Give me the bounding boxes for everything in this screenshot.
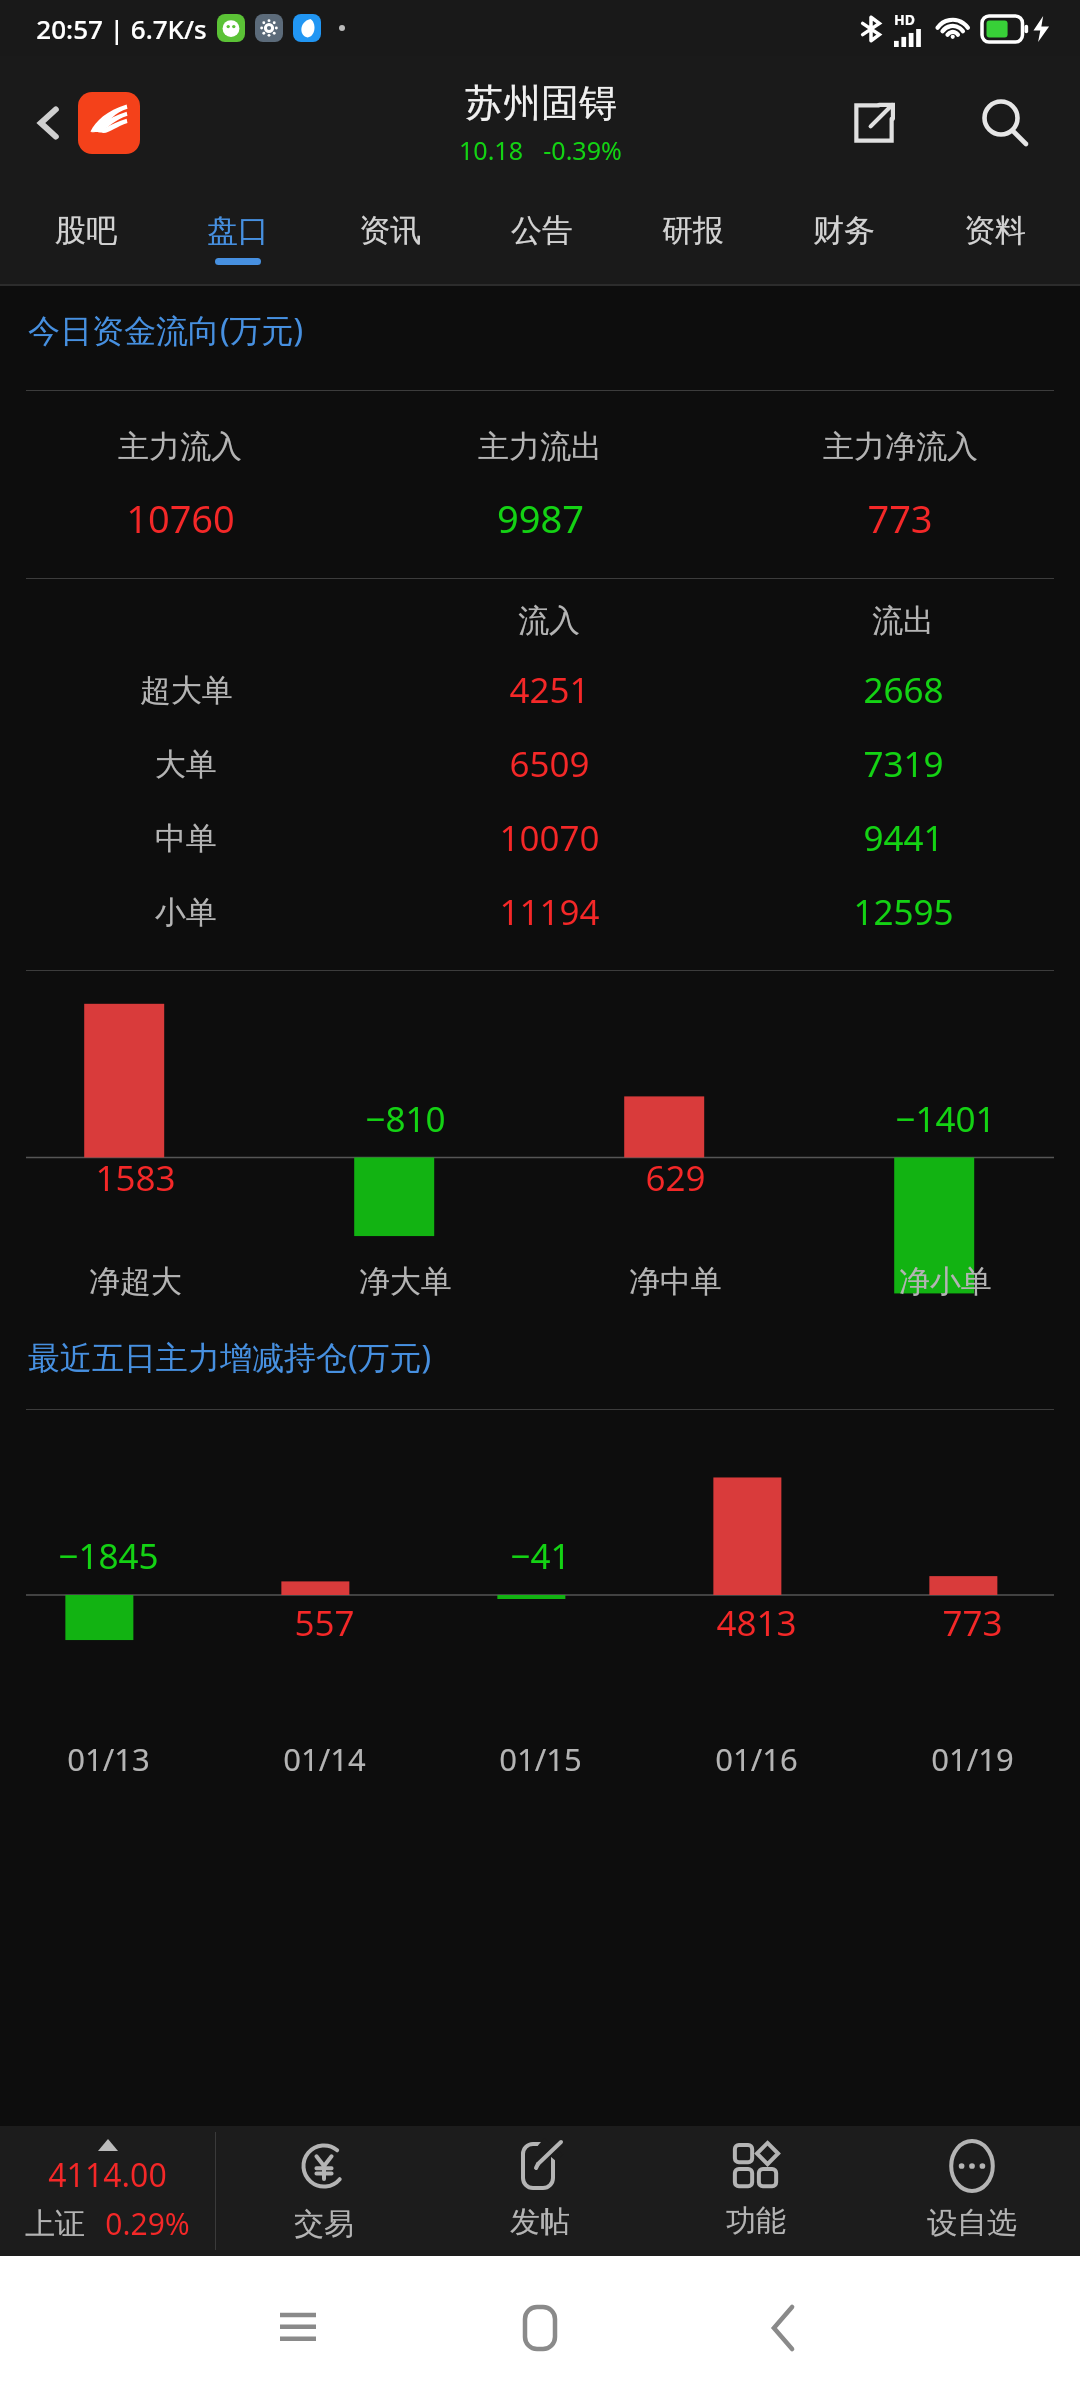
staticText: 财务 [813,211,875,250]
staticText: 4114.00 [48,2153,167,2197]
staticText: 小单 [155,893,217,932]
staticText: 苏州固锝 [465,79,617,127]
button[interactable]: 公告 [466,190,617,286]
staticText: 773 [942,1599,1003,1647]
button[interactable]: Back [738,2283,828,2373]
staticText: 主力净流入 [823,427,978,466]
staticText: 发帖 [510,2203,570,2241]
staticText: 净超大 [89,1262,182,1301]
button[interactable]: 功能 [648,2126,864,2256]
button[interactable]: App logo [78,92,140,154]
staticText: 中单 [155,819,217,858]
staticText: 0.29% [105,2203,190,2244]
staticText: 2668 [863,666,944,714]
button[interactable]: 发帖 [432,2126,648,2256]
staticText: -0.39% [543,133,622,167]
button[interactable]: Back [14,88,84,158]
button[interactable]: 设自选 [864,2126,1080,2256]
staticText: 资讯 [359,211,421,250]
staticText: 研报 [662,211,724,250]
staticText: 6509 [509,740,590,788]
button[interactable]: Share [838,87,910,159]
button[interactable]: Home [495,2283,585,2373]
button[interactable]: 4114.00 [0,2126,215,2256]
button[interactable]: 盘口 [162,190,314,286]
staticText: 功能 [726,2202,786,2240]
staticText: 主力流入 [118,427,242,466]
staticText: 4813 [716,1599,797,1647]
button[interactable]: Recents [253,2283,343,2373]
staticText: −810 [365,1095,446,1143]
button[interactable]: Search [964,82,1046,164]
staticText: 11194 [499,888,600,936]
staticText: 股吧 [55,211,117,250]
button[interactable]: 研报 [617,190,768,286]
staticText: 流出 [872,601,934,640]
staticText: 10070 [499,814,600,862]
staticText: 7319 [863,740,944,788]
staticText: 主力流出 [478,427,602,466]
staticText: 净小单 [899,1262,992,1301]
staticText: 01/14 [283,1738,366,1780]
staticText: 最近五日主力增减持仓(万元) [28,1335,432,1379]
staticText: 01/15 [499,1738,582,1780]
staticText: 流入 [518,601,580,640]
button[interactable]: 资讯 [314,190,466,286]
staticText: 9441 [863,814,944,862]
staticText: −41 [510,1532,571,1580]
staticText: 公告 [511,211,573,250]
staticText: 净大单 [359,1262,452,1301]
button[interactable]: 资料 [919,190,1070,286]
staticText: −1845 [58,1532,159,1580]
staticText: 超大单 [140,671,233,710]
staticText: 12595 [853,888,954,936]
staticText: 01/13 [67,1738,150,1780]
staticText: −1401 [895,1095,996,1143]
staticText: 上证 [25,2205,85,2243]
staticText: 4251 [509,666,590,714]
staticText: 773 [867,492,933,544]
staticText: 10.18 [459,133,523,167]
staticText: 大单 [155,745,217,784]
staticText: 9987 [497,492,584,544]
staticText: 交易 [294,2205,354,2243]
staticText: 557 [294,1599,355,1647]
staticText: 629 [645,1154,706,1202]
staticText: 01/16 [715,1738,798,1780]
button[interactable]: 交易 [216,2126,432,2256]
staticText: 10760 [126,492,235,544]
staticText: 1583 [95,1154,176,1202]
button[interactable]: 股吧 [10,190,162,286]
staticText: 设自选 [927,2204,1017,2242]
staticText: 盘口 [207,211,269,250]
staticText: 净中单 [629,1262,722,1301]
staticText: 资料 [964,211,1026,250]
staticText: 20:57 | 6.7K/s [36,11,207,46]
staticText: 01/19 [931,1738,1014,1780]
staticText: HD [894,10,915,29]
staticText: 今日资金流向(万元) [28,308,304,352]
button[interactable]: 财务 [768,190,919,286]
